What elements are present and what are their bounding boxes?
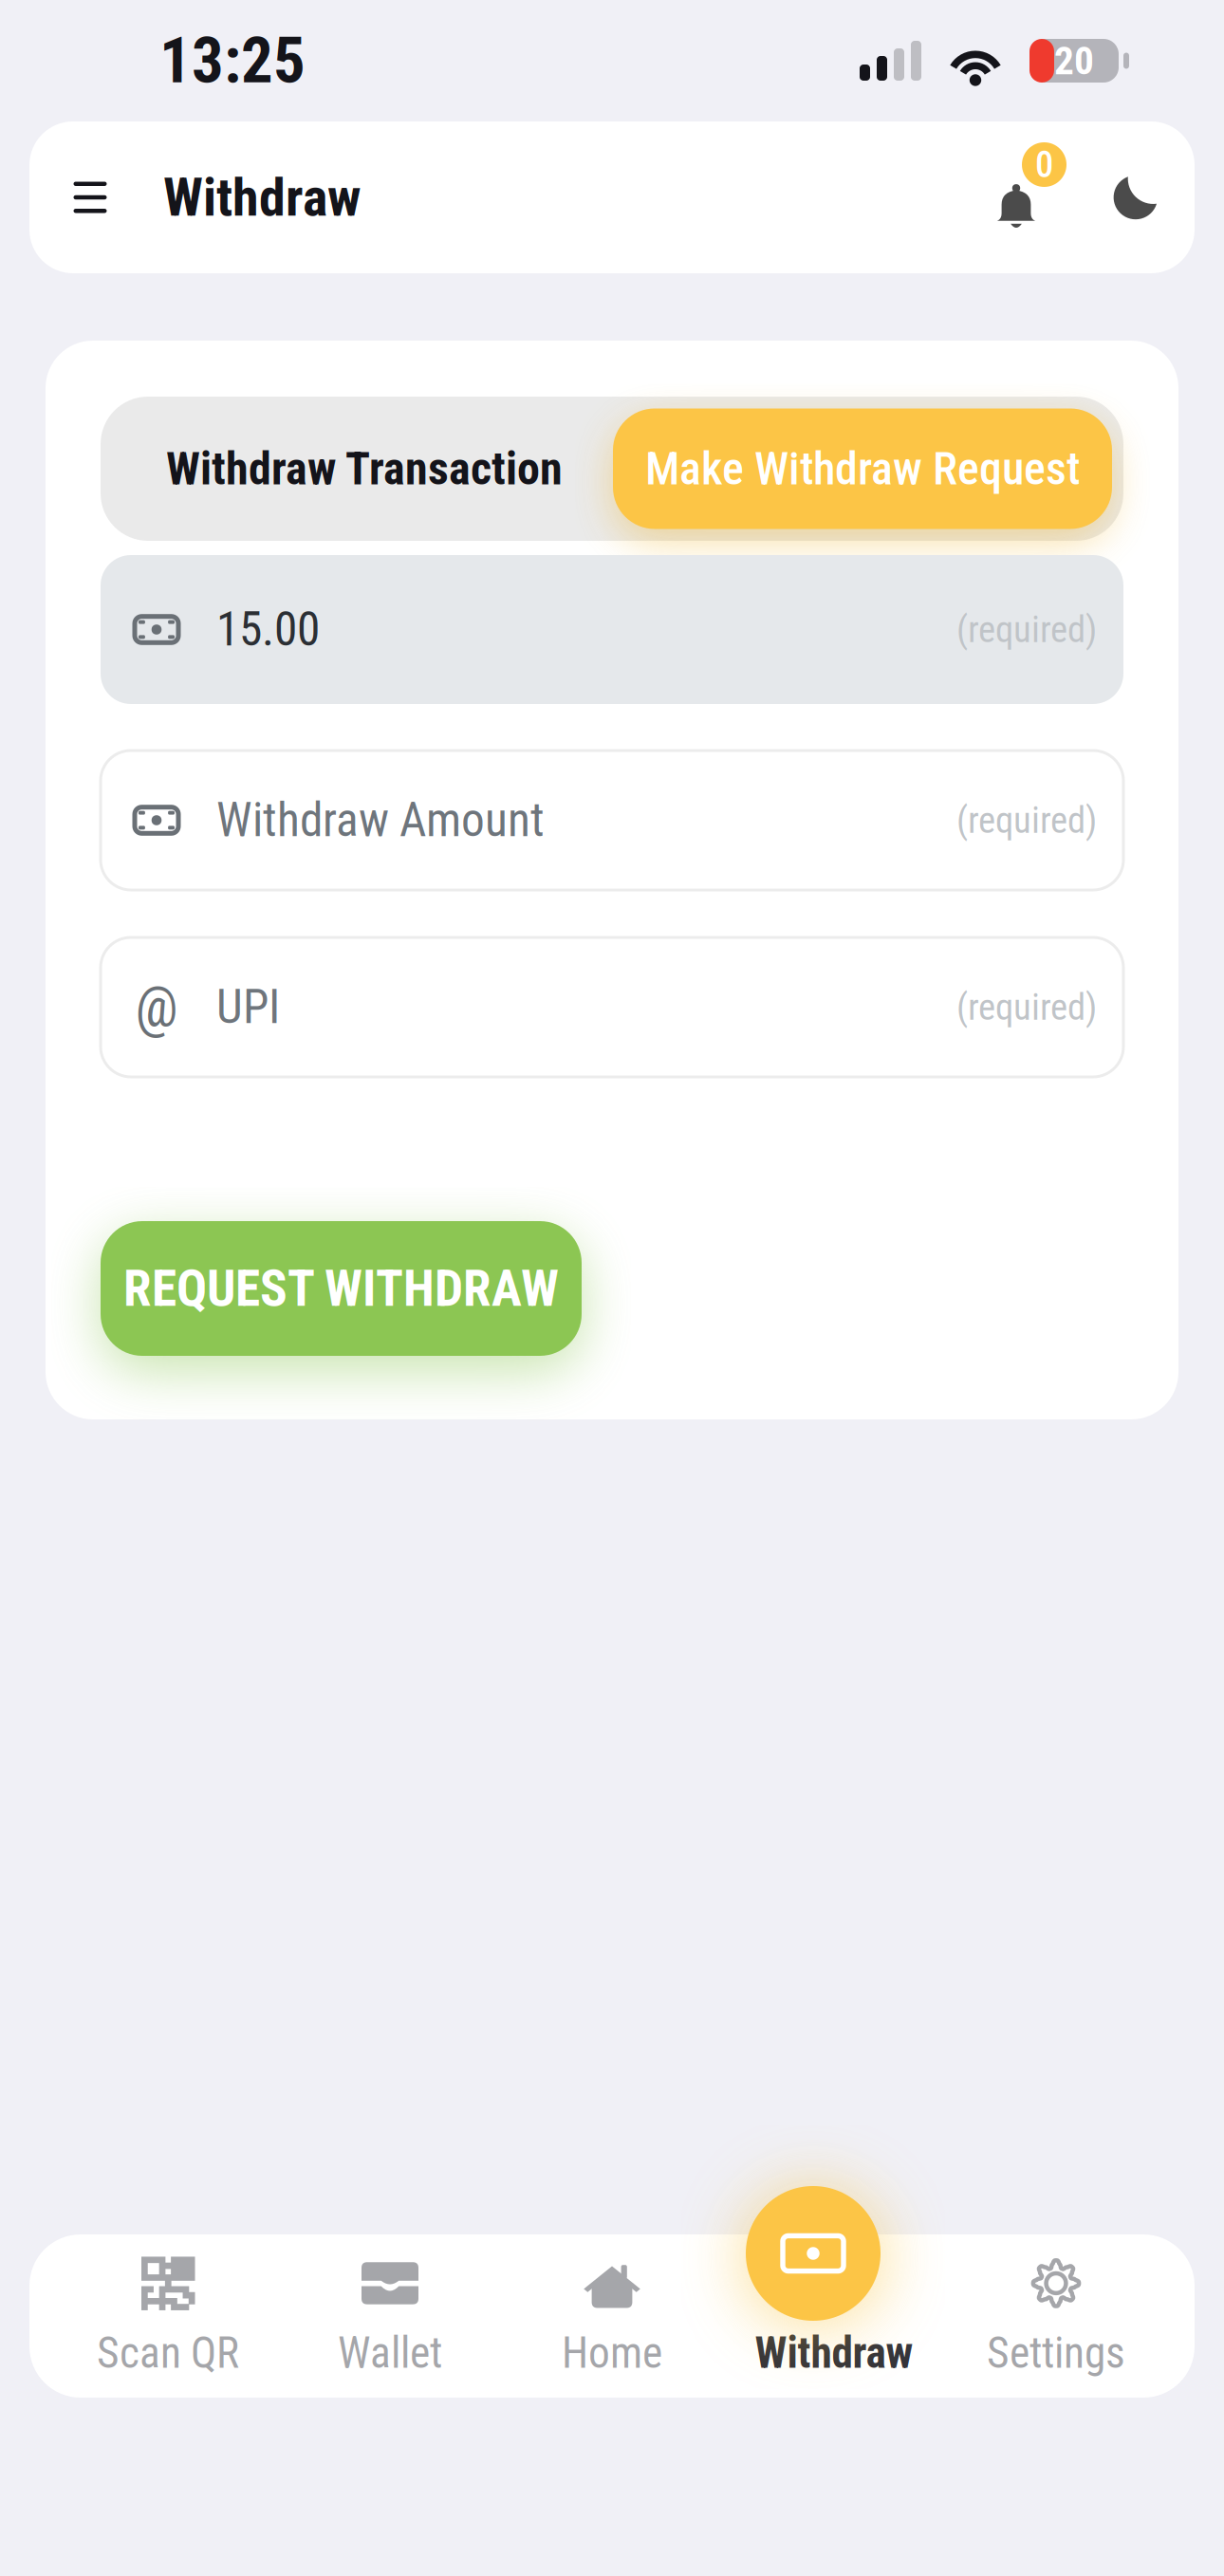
button[interactable]: Wallet (279, 2234, 501, 2398)
staticText: Settings (987, 2328, 1125, 2378)
staticText: @ (135, 975, 178, 1040)
button[interactable]: Menu (29, 121, 151, 273)
staticText: 15.00 (216, 602, 320, 657)
staticText: UPI (216, 980, 280, 1035)
staticText: Home (562, 2328, 662, 2378)
staticText: Make Withdraw Request (645, 442, 1080, 495)
staticText: Withdraw Transaction (166, 442, 563, 495)
button[interactable]: Dark mode (1079, 121, 1195, 273)
staticText: Scan QR (97, 2328, 239, 2378)
button[interactable]: Home (501, 2234, 723, 2398)
staticText: 13:25 (159, 24, 306, 98)
button[interactable]: Withdraw (746, 2186, 881, 2321)
button[interactable]: Withdraw Transaction (101, 397, 613, 541)
staticText: REQUEST WITHDRAW (123, 1259, 559, 1318)
button[interactable]: Make Withdraw Request (613, 408, 1112, 529)
button[interactable]: REQUEST WITHDRAW (101, 1221, 582, 1356)
button[interactable]: Withdraw (723, 2234, 945, 2398)
staticText: 20 (1054, 38, 1094, 84)
staticText: Withdraw (163, 166, 361, 228)
staticText: Withdraw Amount (216, 793, 545, 848)
button[interactable]: Scan QR (57, 2234, 279, 2398)
button[interactable]: Settings (945, 2234, 1167, 2398)
staticText: Wallet (338, 2328, 442, 2378)
staticText: (required) (956, 608, 1097, 651)
staticText: (required) (956, 799, 1097, 842)
staticText: (required) (956, 986, 1097, 1029)
button[interactable]: Notifications (984, 121, 1079, 273)
staticText: 0 (1035, 143, 1053, 186)
staticText: Withdraw (755, 2328, 913, 2378)
